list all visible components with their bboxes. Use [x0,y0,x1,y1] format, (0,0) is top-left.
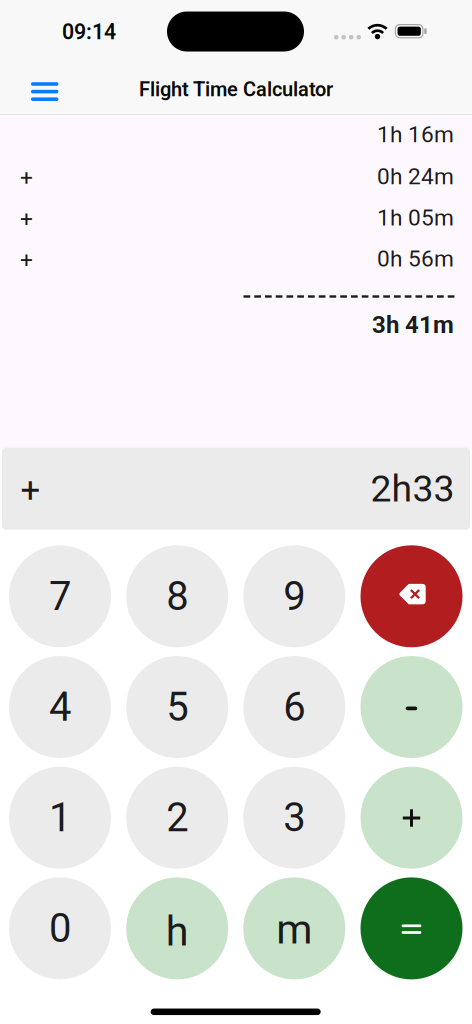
button[interactable]: Delete [360,545,462,647]
button[interactable]: 6 [243,656,345,758]
button[interactable]: 3 [243,767,345,869]
staticText: 2 [166,795,188,840]
button[interactable]: 7 [9,545,111,647]
staticText: 0 [49,905,71,951]
button[interactable]: 1 [9,767,111,869]
staticText: h [166,908,189,955]
staticText: 0h 24m [377,164,454,189]
button[interactable]: 8 [126,545,228,647]
staticText: 8 [166,573,188,619]
staticText: 1h 05m [377,205,454,231]
button[interactable]: 0 [9,877,111,979]
staticText: + [20,206,33,232]
staticText: 09:14 [62,20,116,44]
staticText: + [20,247,33,273]
button[interactable]: Menu [21,74,68,109]
button[interactable]: Plus [360,767,462,869]
staticText: 2h33 [370,467,454,510]
staticText: + [20,165,33,191]
button[interactable]: 4 [9,656,111,758]
staticText: 4 [49,684,71,730]
staticText: 7 [49,573,71,619]
button[interactable]: Minus [360,656,462,758]
staticText: 3 [283,795,305,840]
staticText: 1 [49,795,71,840]
button[interactable]: 5 [126,656,228,758]
staticText: 5 [166,684,188,730]
staticText: 3h 41m [372,311,454,338]
button[interactable]: 2 [126,767,228,869]
staticText: m [276,906,312,953]
button[interactable]: 9 [243,545,345,647]
staticText: + [20,470,40,510]
staticText: 6 [283,684,305,730]
staticText: 0h 56m [377,246,454,272]
staticText: Flight Time Calculator [139,78,333,101]
button[interactable]: Equals [360,877,462,979]
button[interactable]: h [126,877,228,979]
staticText: 9 [283,573,305,619]
staticText: 1h 16m [377,122,454,147]
button[interactable]: m [243,877,345,979]
